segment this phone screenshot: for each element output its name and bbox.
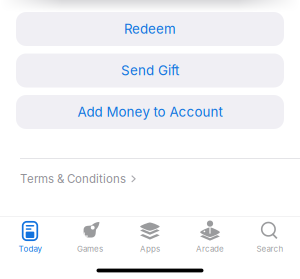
button[interactable]: Search	[240, 218, 300, 254]
staticText: Redeem	[124, 21, 176, 37]
button[interactable]: Redeem	[16, 12, 284, 46]
staticText: Games	[77, 244, 103, 254]
button[interactable]: Today	[0, 218, 60, 254]
button[interactable]: Send Gift	[16, 53, 284, 87]
staticText: Apps	[140, 244, 160, 254]
staticText: Send Gift	[121, 62, 179, 78]
staticText: Add Money to Account	[77, 104, 222, 120]
staticText: Arcade	[196, 244, 224, 254]
staticText: Terms & Conditions	[20, 172, 126, 186]
staticText: Search	[256, 244, 283, 254]
button[interactable]: Terms & Conditions	[0, 159, 300, 197]
button[interactable]: Apps	[120, 218, 180, 254]
staticText: Today	[18, 244, 41, 254]
button[interactable]: Arcade	[180, 218, 240, 254]
button[interactable]: Add Money to Account	[16, 95, 284, 129]
button[interactable]: Games	[60, 218, 120, 254]
